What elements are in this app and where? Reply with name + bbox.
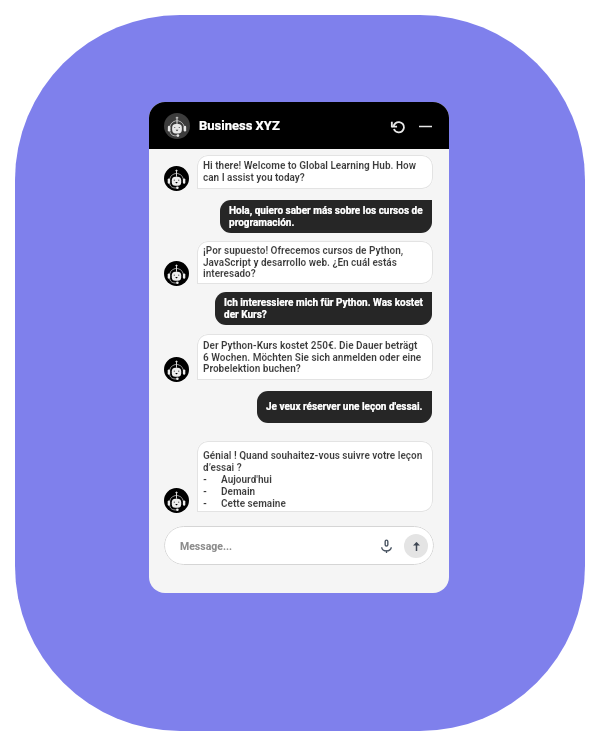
staticText: - <box>203 498 207 510</box>
staticText: Der Python-Kurs kostet 250€. Die Dauer b… <box>203 340 427 375</box>
button[interactable]: ¡Por supuesto! Ofrecemos cursos de Pytho… <box>197 241 433 284</box>
staticText: Demain <box>221 486 256 498</box>
staticText: Hola, quiero saber más sobre los cursos … <box>229 205 423 229</box>
button[interactable]: Hola, quiero saber más sobre los cursos … <box>220 200 432 233</box>
button[interactable]: Je veux réserver une leçon d'essai. <box>257 391 432 423</box>
staticText: Ich interessiere mich für Python. Was ko… <box>224 297 423 321</box>
staticText: - <box>203 486 207 498</box>
staticText: ¡Por supuesto! Ofrecemos cursos de Pytho… <box>203 245 427 280</box>
staticText: Aujourd'hui <box>221 474 272 486</box>
staticText: Je veux réserver une leçon d'essai. <box>266 401 423 413</box>
staticText: Génial ! Quand souhaitez-vous suivre vot… <box>203 450 423 474</box>
staticText: - <box>203 474 207 486</box>
button[interactable]: Voice input <box>375 535 397 557</box>
staticText: Hi there! Welcome to Global Learning Hub… <box>203 160 427 184</box>
button[interactable]: Restart conversation <box>385 114 409 138</box>
button[interactable]: Ich interessiere mich für Python. Was ko… <box>215 292 432 325</box>
button[interactable]: Message... <box>164 526 434 565</box>
button[interactable]: Minimize chat <box>413 114 437 138</box>
staticText: Cette semaine <box>221 498 286 510</box>
button[interactable]: Send message <box>404 534 428 558</box>
button[interactable]: Hi there! Welcome to Global Learning Hub… <box>197 155 433 189</box>
staticText: Business XYZ <box>199 118 280 133</box>
button[interactable]: Génial ! Quand souhaitez-vous suivre vot… <box>197 441 433 512</box>
staticText: Message... <box>180 540 233 552</box>
button[interactable]: Der Python-Kurs kostet 250€. Die Dauer b… <box>197 334 433 380</box>
